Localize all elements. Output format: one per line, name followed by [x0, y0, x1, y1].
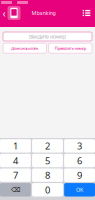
staticText: Введите номер [29, 33, 66, 40]
button[interactable]: ⌫ [0, 183, 31, 196]
staticText: 0 [45, 184, 50, 196]
button[interactable]: 2 [32, 139, 63, 153]
button[interactable]: 6 [64, 154, 95, 167]
button[interactable]: 8 [32, 168, 63, 182]
staticText: OK [76, 186, 83, 193]
staticText: Привязать номер [55, 45, 86, 51]
staticText: 8 [45, 169, 50, 181]
button[interactable]: 0 [32, 183, 63, 196]
staticText: 6 [77, 154, 82, 167]
button[interactable]: Привязать номер [49, 43, 92, 53]
button[interactable]: 3 [64, 139, 95, 153]
button[interactable]: Back [1, 5, 7, 20]
staticText: 5 [45, 154, 50, 167]
staticText: 2 [45, 140, 50, 152]
staticText: 3 [77, 140, 82, 152]
button[interactable]: OK [64, 183, 95, 196]
button[interactable]: 9 [64, 168, 95, 182]
staticText: ⌫ [11, 186, 20, 194]
staticText: Демо-кошелёк [11, 45, 38, 51]
button[interactable]: 1 [0, 139, 31, 153]
button[interactable]: Введите номер [3, 32, 92, 41]
staticText: 7 [13, 169, 18, 181]
staticText: 1 [13, 140, 18, 152]
staticText: 9 [77, 169, 82, 181]
button[interactable]: 7 [0, 168, 31, 182]
button[interactable]: Device [7, 5, 21, 20]
staticText: 4 [13, 154, 18, 167]
button[interactable]: 5 [32, 154, 63, 167]
button[interactable]: 4 [0, 154, 31, 167]
staticText: ‹ [2, 6, 5, 20]
button[interactable]: Menu [80, 5, 92, 20]
staticText: Mbanking [31, 9, 55, 17]
button[interactable]: Демо-кошелёк [3, 43, 46, 53]
